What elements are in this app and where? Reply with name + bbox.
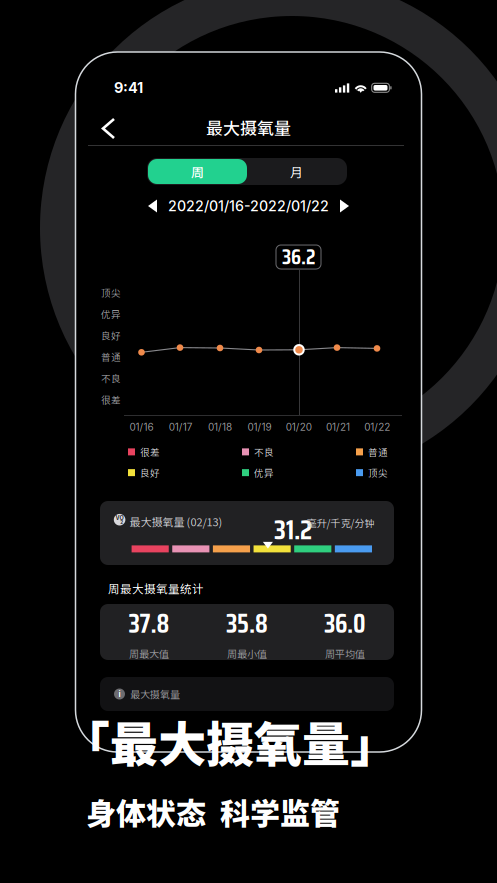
staticText: 很差 — [140, 445, 160, 459]
staticText: 36.2 — [282, 240, 315, 274]
button[interactable]: Next week — [340, 199, 349, 212]
staticText: 周 — [191, 162, 204, 181]
staticText: i — [118, 689, 120, 699]
staticText: 优异 — [101, 307, 121, 321]
staticText: 最大摄氧量 (02/13) — [129, 513, 222, 529]
staticText: 最大摄氧量 — [206, 115, 291, 140]
staticText: 顶尖 — [101, 286, 121, 299]
button[interactable]: Back — [92, 108, 125, 149]
staticText: 9:41 — [114, 79, 143, 96]
staticText: 很差 — [101, 393, 121, 406]
staticText: 良好 — [101, 328, 121, 342]
staticText: 周最小值 — [227, 646, 267, 661]
staticText: 优异 — [254, 466, 274, 480]
staticText: 良好 — [140, 466, 160, 480]
staticText: 「最大摄氧量」 — [62, 706, 398, 775]
staticText: 月 — [290, 162, 303, 181]
staticText: 36.0 — [324, 603, 366, 644]
staticText: 01/16 — [129, 421, 153, 433]
staticText: 普通 — [368, 445, 388, 459]
staticText: 01/19 — [247, 421, 271, 433]
button[interactable]: Previous week — [148, 199, 157, 212]
staticText: 不良 — [254, 445, 274, 459]
button[interactable]: 周 — [148, 159, 247, 184]
staticText: 顶尖 — [368, 466, 388, 480]
staticText: 2022/01/16-2022/01/22 — [168, 197, 329, 215]
staticText: 不良 — [101, 371, 121, 385]
staticText: 周平均值 — [325, 646, 365, 661]
staticText: 周最大值 — [129, 646, 169, 661]
staticText: 最大摄氧量 — [130, 687, 180, 701]
staticText: 01/20 — [286, 421, 312, 433]
staticText: 普通 — [101, 350, 121, 364]
staticText: 2 — [120, 519, 123, 525]
staticText: 35.8 — [226, 603, 268, 644]
staticText: 01/18 — [208, 421, 232, 433]
staticText: 毫升/千克/分钟 — [307, 515, 375, 530]
staticText: 01/21 — [326, 421, 350, 433]
staticText: 周最大摄氧量统计 — [108, 580, 204, 597]
staticText: 01/17 — [169, 421, 193, 433]
staticText: 37.8 — [128, 603, 169, 644]
staticText: 31.2 — [274, 508, 312, 551]
staticText: 01/22 — [364, 421, 390, 433]
staticText: VO — [116, 515, 124, 521]
staticText: 身体状态 科学监管 — [86, 790, 340, 833]
button[interactable]: 月 — [247, 159, 346, 184]
